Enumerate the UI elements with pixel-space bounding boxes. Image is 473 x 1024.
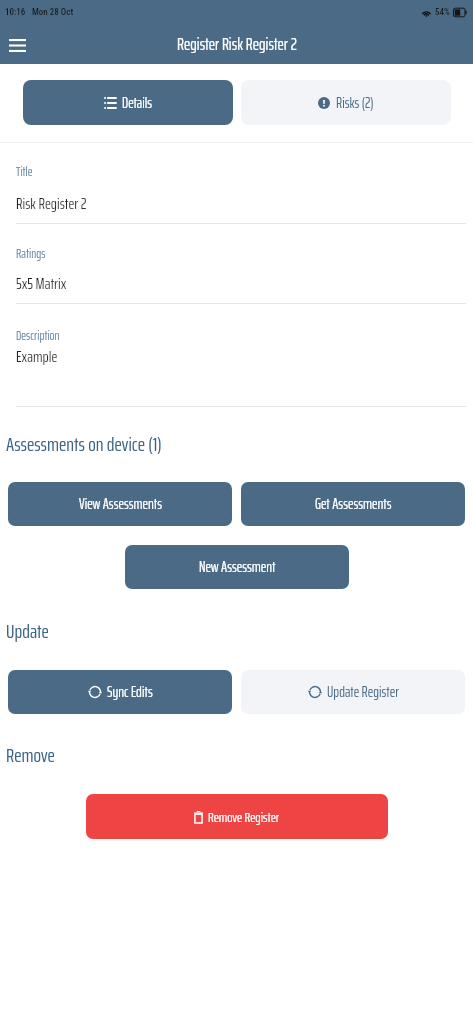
staticText: Description bbox=[16, 325, 60, 345]
staticText: 5x5 Matrix bbox=[16, 271, 67, 296]
button[interactable]: Remove Register bbox=[86, 794, 388, 839]
staticText: Example bbox=[16, 344, 58, 369]
staticText: New Assessment bbox=[199, 555, 276, 579]
button[interactable]: Menu bbox=[3, 31, 31, 59]
staticText: 10:16 bbox=[5, 7, 26, 18]
staticText: Register Risk Register 2 bbox=[177, 31, 297, 58]
button[interactable]: Update Register bbox=[241, 670, 465, 714]
staticText: Risks (2) bbox=[336, 91, 374, 115]
staticText: Remove Register bbox=[208, 806, 280, 828]
staticText: Assessments on device (1) bbox=[6, 428, 162, 459]
staticText: Mon 28 Oct bbox=[32, 7, 74, 18]
staticText: Update Register bbox=[327, 680, 399, 704]
button[interactable]: New Assessment bbox=[125, 545, 349, 589]
staticText: Update bbox=[6, 615, 49, 646]
staticText: View Assessments bbox=[79, 492, 162, 516]
button[interactable]: View Assessments bbox=[8, 482, 232, 526]
staticText: Remove bbox=[6, 739, 55, 770]
button[interactable]: Details bbox=[23, 80, 233, 125]
staticText: Get Assessments bbox=[315, 492, 392, 516]
staticText: Details bbox=[122, 91, 153, 115]
staticText: Title bbox=[16, 161, 33, 181]
staticText: Ratings bbox=[16, 243, 46, 263]
staticText: 54% bbox=[435, 7, 450, 18]
staticText: Sync Edits bbox=[107, 680, 153, 704]
button[interactable]: Get Assessments bbox=[241, 482, 465, 526]
staticText: Risk Register 2 bbox=[16, 191, 87, 216]
button[interactable]: Sync Edits bbox=[8, 670, 232, 714]
button[interactable]: Risks (2) bbox=[241, 80, 451, 125]
